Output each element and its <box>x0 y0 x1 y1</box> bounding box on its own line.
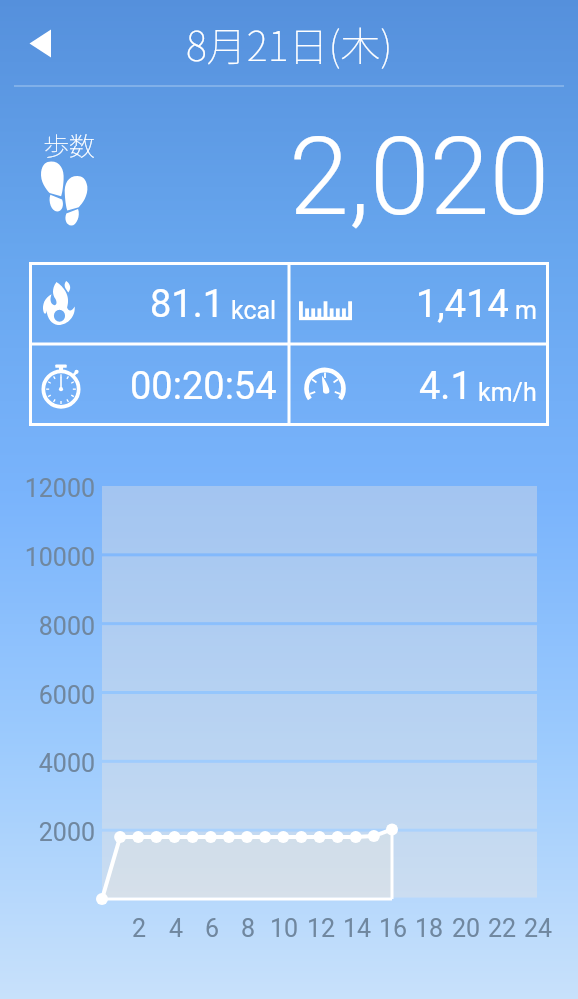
staticText: 4 <box>169 914 184 943</box>
staticText: 12000 <box>24 474 95 503</box>
button[interactable]: 1,414 <box>289 262 549 344</box>
staticText: 6000 <box>38 681 95 710</box>
staticText: 2,020 <box>289 114 550 241</box>
staticText: 24 <box>524 914 553 943</box>
button[interactable]: 4.1 <box>289 344 549 426</box>
staticText: km/h <box>478 378 537 407</box>
staticText: 22 <box>488 914 517 943</box>
staticText: kcal <box>231 296 277 325</box>
staticText: 12 <box>307 914 336 943</box>
staticText: 10000 <box>24 543 95 572</box>
staticText: 2000 <box>38 818 95 847</box>
staticText: 6 <box>205 914 220 943</box>
staticText: 4.1 <box>419 364 472 409</box>
staticText: 18 <box>415 914 444 943</box>
button[interactable]: Back <box>8 16 64 72</box>
staticText: 8 <box>241 914 256 943</box>
staticText: 歩数 <box>43 126 96 164</box>
staticText: 8000 <box>38 612 95 641</box>
staticText: 20 <box>452 914 481 943</box>
staticText: 00:20:54 <box>130 364 277 409</box>
button[interactable]: 00:20:54 <box>29 344 289 426</box>
staticText: 16 <box>379 914 408 943</box>
staticText: 10 <box>270 914 299 943</box>
staticText: 14 <box>343 914 372 943</box>
staticText: m <box>515 296 537 325</box>
staticText: 2 <box>132 914 147 943</box>
button[interactable]: 81.1 <box>29 262 289 344</box>
staticText: 81.1 <box>150 282 225 327</box>
staticText: 8月21日(木) <box>186 15 393 73</box>
staticText: 4000 <box>38 749 95 778</box>
staticText: 1,414 <box>416 282 509 327</box>
